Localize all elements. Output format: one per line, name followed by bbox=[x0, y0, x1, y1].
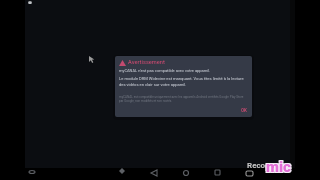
staticText: mic bbox=[267, 157, 292, 175]
button[interactable]: Recents bbox=[211, 166, 225, 180]
button[interactable]: Home bbox=[179, 166, 193, 180]
staticText: mic bbox=[265, 159, 290, 177]
button[interactable]: OK bbox=[241, 108, 247, 113]
staticText: mic bbox=[266, 158, 291, 176]
other: Rotate bbox=[119, 168, 125, 174]
staticText: OK bbox=[241, 108, 247, 113]
staticText: myCANAL n'est pas compatible avec votre … bbox=[119, 68, 211, 73]
staticText: mic bbox=[267, 159, 292, 177]
other: Screenshot bbox=[29, 169, 35, 175]
staticText: Recor bbox=[247, 161, 269, 170]
staticText: myCANAL est compatible uniquement avec l… bbox=[119, 95, 244, 103]
staticText: mic bbox=[265, 157, 290, 175]
staticText: Le module DRM Widevine est manquant. Vou… bbox=[119, 76, 248, 87]
button[interactable]: Back bbox=[147, 166, 161, 180]
staticText: Avertissement bbox=[128, 59, 165, 66]
